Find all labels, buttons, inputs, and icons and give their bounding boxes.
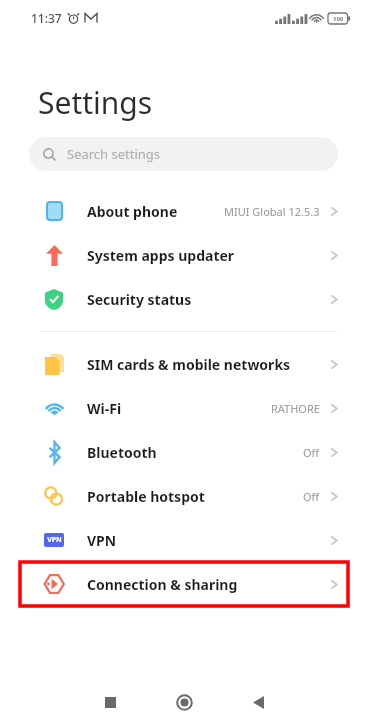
staticText: Off xyxy=(303,489,320,504)
button[interactable]: About phone xyxy=(0,189,367,233)
button[interactable]: Portable hotspot xyxy=(0,474,367,518)
staticText: VPN xyxy=(87,531,117,550)
staticText: RATHORE xyxy=(271,401,320,416)
staticText: Settings xyxy=(38,82,153,123)
staticText: Connection & sharing xyxy=(87,575,238,594)
staticText: Security status xyxy=(87,290,192,309)
button[interactable]: Wi-Fi xyxy=(0,386,367,430)
staticText: MIUI Global 12.5.3 xyxy=(224,204,320,219)
staticText: Portable hotspot xyxy=(87,487,205,506)
button[interactable]: System apps updater xyxy=(0,233,367,277)
staticText: Bluetooth xyxy=(87,443,157,462)
staticText: Off xyxy=(303,445,320,460)
button[interactable]: Search settings xyxy=(29,137,338,171)
button[interactable]: Security status xyxy=(0,277,367,321)
staticText: Search settings xyxy=(67,145,161,163)
button[interactable]: Recent apps xyxy=(86,680,134,725)
staticText: System apps updater xyxy=(87,246,235,265)
staticText: SIM cards & mobile networks xyxy=(87,355,291,374)
button[interactable]: SIM cards & mobile networks xyxy=(0,342,367,386)
staticText: Wi-Fi xyxy=(87,399,122,418)
button[interactable]: Back xyxy=(234,680,282,725)
button[interactable]: Home xyxy=(160,680,208,725)
staticText: 11:37 xyxy=(31,10,62,26)
button[interactable]: Bluetooth xyxy=(0,430,367,474)
staticText: About phone xyxy=(87,202,178,221)
staticText: VPN xyxy=(47,535,62,545)
button[interactable]: VPN xyxy=(0,518,367,562)
button[interactable]: Connection & sharing xyxy=(20,562,348,606)
staticText: 100 xyxy=(333,15,344,23)
